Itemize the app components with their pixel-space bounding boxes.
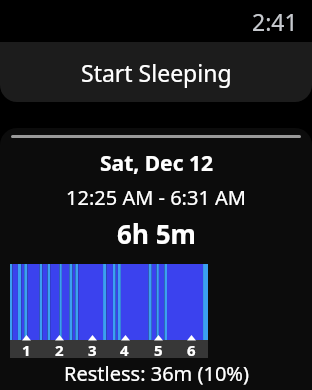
button[interactable]: Sat, Dec 12 — [0, 128, 312, 390]
staticText: 2:41 — [252, 6, 298, 37]
staticText: 2 — [55, 340, 64, 360]
staticText: 5 — [154, 340, 163, 360]
staticText: 4 — [120, 340, 129, 360]
staticText: 12:25 AM - 6:31 AM — [66, 184, 246, 211]
staticText: Sat, Dec 12 — [100, 149, 213, 178]
staticText: 1 — [22, 340, 31, 360]
button[interactable]: Start Sleeping — [0, 42, 312, 102]
other: Sleep stage chart — [0, 261, 312, 355]
staticText: 6h 5m — [117, 216, 196, 251]
staticText: Start Sleeping — [81, 57, 232, 88]
staticText: Restless: 36m (10%) — [64, 360, 249, 387]
staticText: 3 — [88, 340, 97, 360]
staticText: 6 — [187, 340, 196, 360]
